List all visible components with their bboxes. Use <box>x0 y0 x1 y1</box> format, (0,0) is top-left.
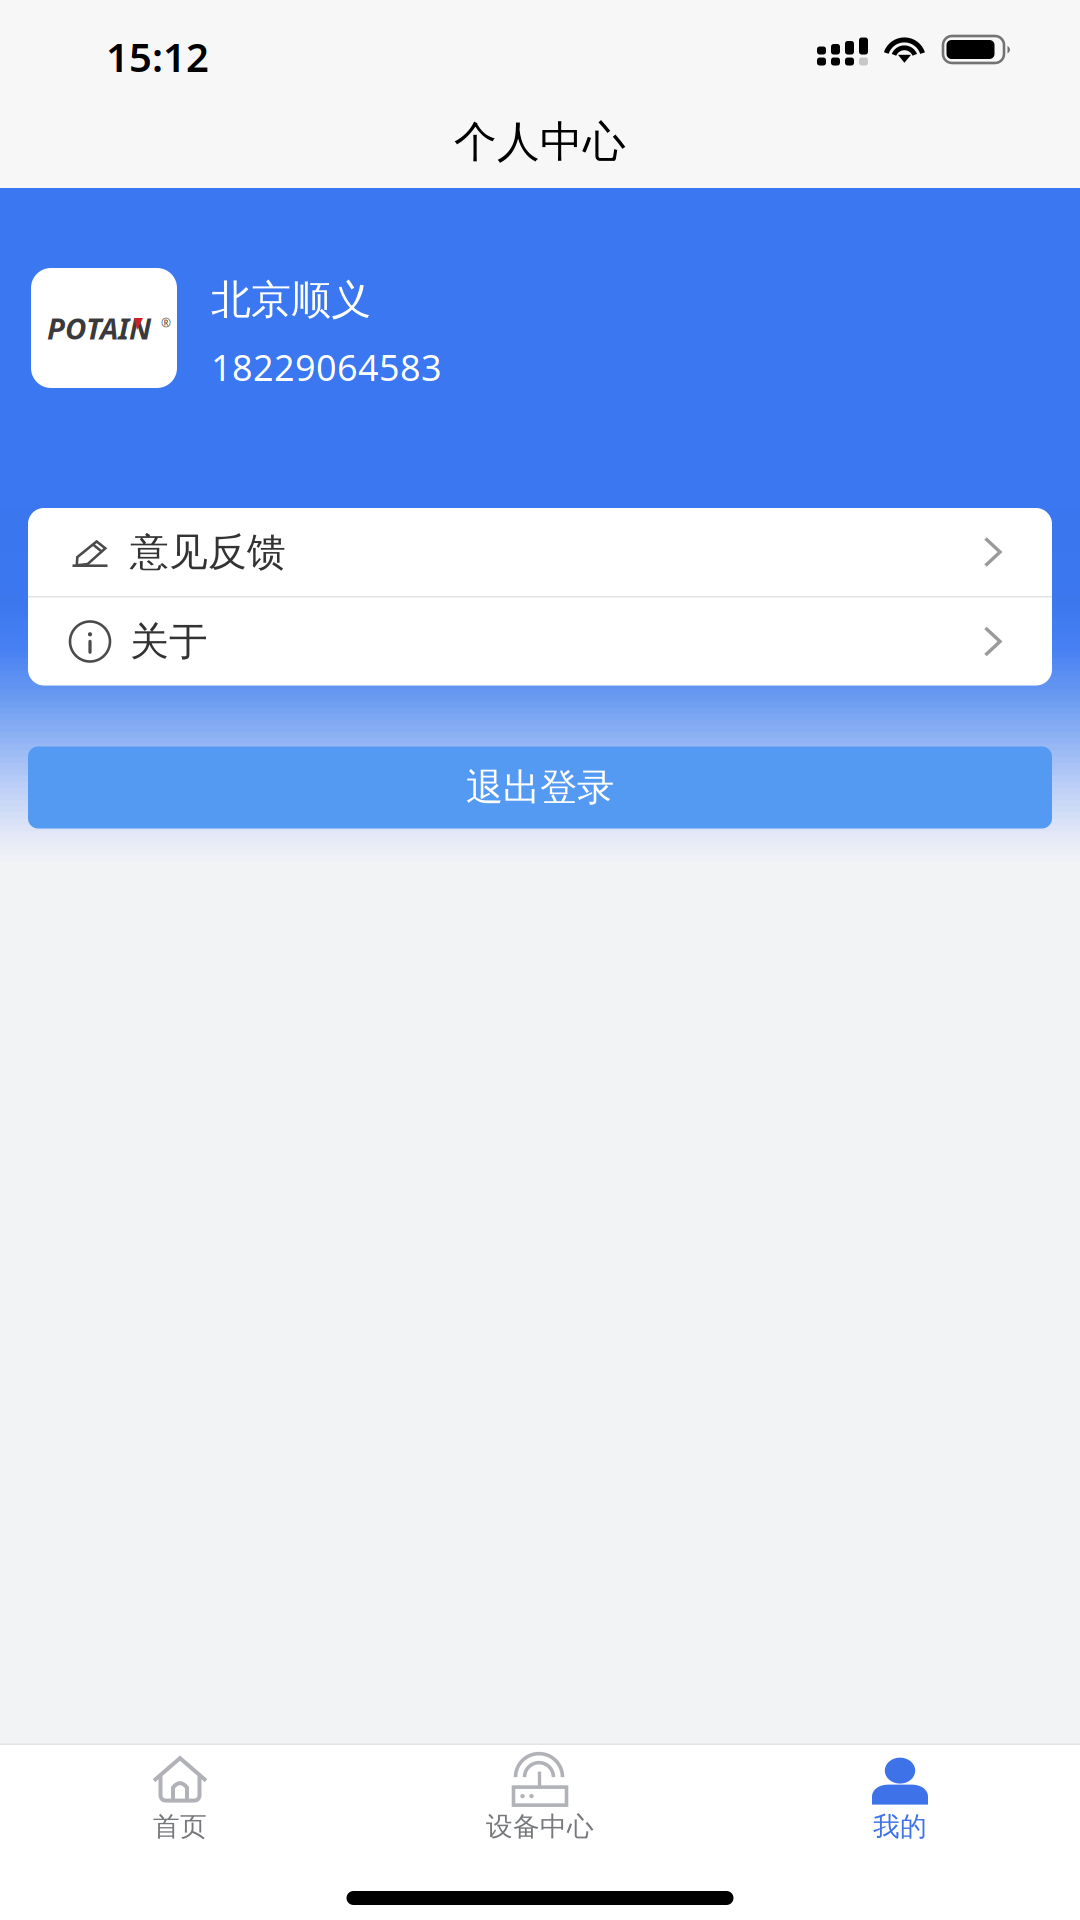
staticText: 18229064583 <box>211 343 442 391</box>
staticText: 个人中心 <box>454 116 626 168</box>
staticText: ® <box>161 315 171 331</box>
button[interactable]: 意见反馈 <box>28 508 1052 596</box>
staticText: 关于 <box>130 618 208 665</box>
staticText: 意见反馈 <box>130 528 286 576</box>
staticText: 北京顺义 <box>211 275 371 324</box>
button[interactable]: 首页 <box>0 1745 360 1852</box>
staticText: 我的 <box>873 1810 927 1843</box>
button[interactable]: 退出登录 <box>28 746 1052 828</box>
button[interactable]: 关于 <box>28 597 1052 685</box>
staticText: 退出登录 <box>466 765 614 810</box>
staticText: 设备中心 <box>486 1810 594 1843</box>
staticText: POTAIN <box>47 308 151 347</box>
button[interactable]: 我的 <box>720 1745 1080 1852</box>
staticText: 首页 <box>153 1810 207 1843</box>
button[interactable]: 设备中心 <box>360 1745 720 1852</box>
staticText: 15:12 <box>106 30 209 83</box>
